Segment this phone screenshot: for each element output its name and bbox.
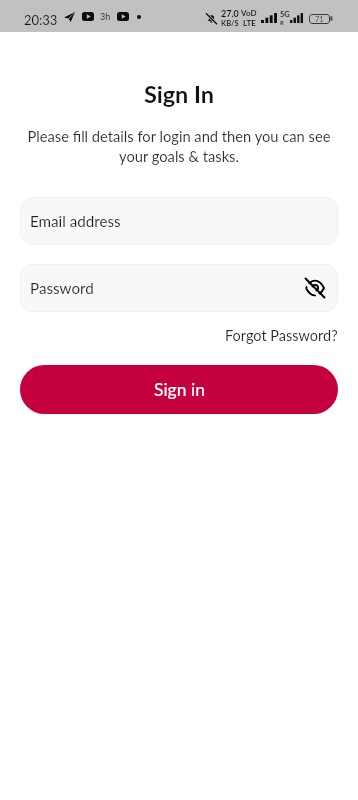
- staticText: VoD: [241, 8, 257, 18]
- staticText: LTE: [243, 18, 256, 28]
- staticText: Password: [30, 279, 301, 297]
- button[interactable]: Sign in: [20, 365, 338, 414]
- staticText: Sign in: [154, 379, 205, 400]
- staticText: Email address: [30, 212, 329, 230]
- staticText: Sign In: [0, 80, 358, 108]
- button[interactable]: Password: [20, 264, 338, 312]
- staticText: 71: [315, 15, 324, 24]
- staticText: 20:33: [24, 12, 58, 28]
- staticText: R: [280, 19, 284, 26]
- button[interactable]: Forgot Password?: [225, 327, 338, 344]
- staticText: 27.0: [221, 8, 239, 19]
- staticText: Forgot Password?: [225, 327, 338, 344]
- staticText: 3h: [100, 11, 111, 22]
- button[interactable]: Show password: [301, 274, 329, 302]
- button[interactable]: Email address: [20, 197, 338, 245]
- staticText: KB/S: [221, 19, 239, 28]
- staticText: Please fill details for login and then y…: [16, 127, 342, 165]
- staticText: 5G: [280, 10, 290, 19]
